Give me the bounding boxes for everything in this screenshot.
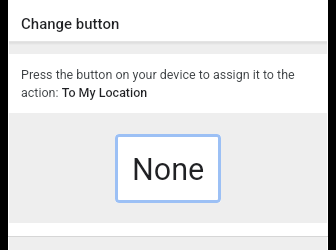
staticText: None [132,152,205,188]
button[interactable]: Assigned button: None [115,134,221,203]
staticText: Press the button on your device to assig… [21,67,315,100]
staticText: Change button [21,15,120,33]
